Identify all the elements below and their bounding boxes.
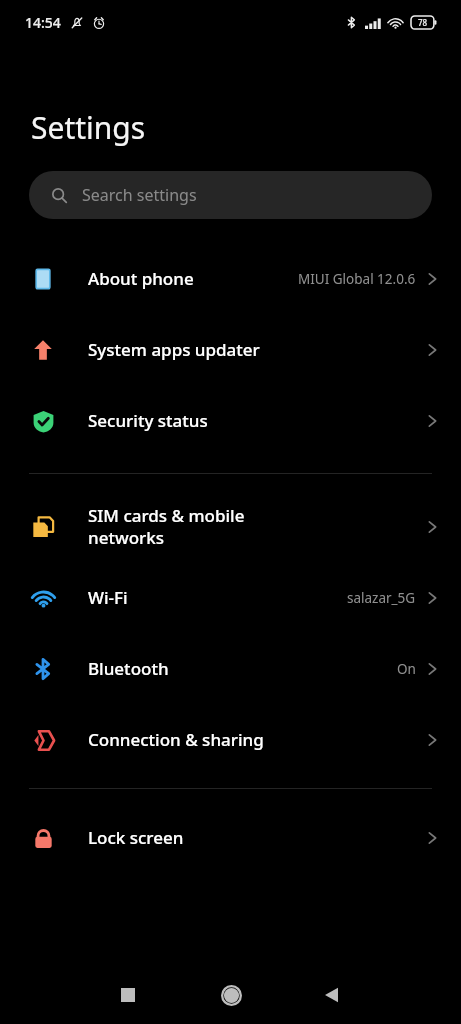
staticText: Connection & sharing: [88, 728, 428, 751]
button[interactable]: Wi-Fi: [0, 562, 461, 633]
button[interactable]: Lock screen: [0, 802, 461, 873]
staticText: salazar_5G: [347, 589, 416, 607]
button[interactable]: SIM cards & mobile networks: [0, 491, 461, 562]
button[interactable]: Search settings: [29, 171, 432, 219]
staticText: Lock screen: [88, 826, 428, 849]
button[interactable]: Bluetooth: [0, 633, 461, 704]
button[interactable]: Recent apps: [104, 971, 152, 1019]
staticText: Wi-Fi: [88, 586, 347, 609]
button[interactable]: Security status: [0, 385, 461, 456]
staticText: Search settings: [82, 184, 197, 206]
staticText: About phone: [88, 267, 298, 290]
button[interactable]: About phone: [0, 243, 461, 314]
staticText: 14:54: [25, 13, 61, 32]
staticText: 78: [418, 17, 428, 28]
staticText: System apps updater: [88, 338, 428, 361]
button[interactable]: System apps updater: [0, 314, 461, 385]
button[interactable]: Home: [207, 971, 255, 1019]
button[interactable]: Connection & sharing: [0, 704, 461, 775]
staticText: MIUI Global 12.0.6: [298, 270, 416, 288]
staticText: SIM cards & mobile networks: [88, 504, 428, 549]
staticText: Settings: [31, 107, 146, 148]
button[interactable]: Back: [307, 971, 355, 1019]
staticText: Security status: [88, 409, 428, 432]
staticText: On: [397, 660, 416, 678]
staticText: Bluetooth: [88, 657, 397, 680]
